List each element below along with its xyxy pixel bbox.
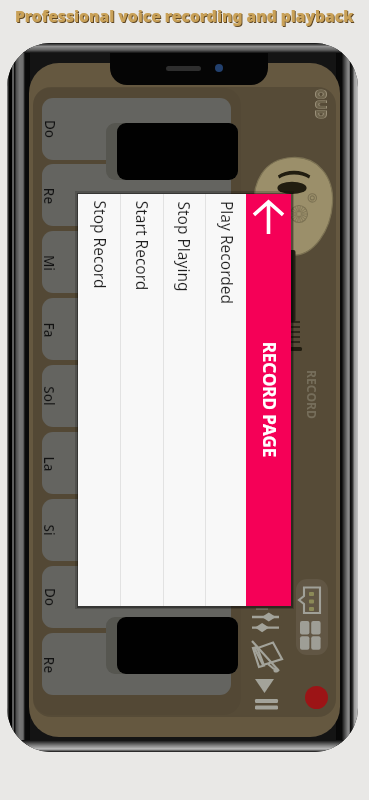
staticText: Stop Record	[89, 200, 110, 288]
staticText: OUD	[312, 88, 330, 119]
button[interactable]: Grid	[300, 621, 321, 651]
button[interactable]: Back	[253, 201, 284, 234]
button[interactable]: Re	[42, 633, 231, 695]
staticText: Fa	[42, 322, 57, 337]
staticText: OUD	[310, 88, 328, 119]
staticText: Start Record	[131, 200, 152, 290]
staticText: Professional voice recording and playbac…	[15, 5, 354, 26]
button[interactable]: Stop Playing	[163, 194, 205, 606]
button[interactable]: Play	[255, 679, 274, 693]
button[interactable]: Sheet music	[298, 585, 322, 615]
button[interactable]: Start Record	[120, 194, 162, 606]
button[interactable]: Mi	[42, 231, 231, 293]
button[interactable]: Stop Record	[78, 194, 120, 606]
button[interactable]	[106, 617, 238, 674]
staticText: Sol	[42, 386, 58, 406]
button[interactable]: Equalizer	[250, 606, 281, 634]
button[interactable]: La	[42, 432, 231, 494]
button[interactable]: Fa	[42, 298, 231, 360]
staticText: Do	[42, 587, 58, 606]
button[interactable]: Do	[42, 566, 231, 628]
staticText: La	[42, 456, 57, 471]
button[interactable]: Play Recorded	[205, 194, 247, 606]
button[interactable]: Sol	[42, 365, 231, 427]
button[interactable]: Record	[305, 686, 328, 709]
staticText: Re	[42, 656, 57, 673]
button[interactable]: Pause	[255, 699, 278, 710]
staticText: OUD	[311, 88, 329, 119]
button[interactable]: Si	[42, 499, 231, 561]
button[interactable]: Do	[42, 98, 231, 160]
staticText: Stop Playing	[174, 201, 195, 292]
staticText: Mi	[42, 254, 57, 271]
button[interactable]: Re	[42, 164, 231, 226]
staticText: Play Recorded	[216, 200, 237, 304]
staticText: Professional voice recording and playbac…	[16, 6, 355, 27]
button[interactable]	[106, 123, 238, 180]
staticText: Do	[42, 119, 58, 138]
staticText: RECORD	[303, 370, 320, 419]
staticText: Si	[42, 524, 58, 536]
staticText: RECORD PAGE	[257, 341, 280, 457]
staticText: Re	[42, 187, 57, 204]
button[interactable]: Megaphone	[252, 640, 285, 672]
